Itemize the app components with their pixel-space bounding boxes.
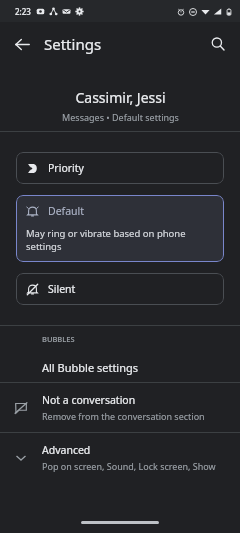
staticText: Advanced bbox=[42, 443, 91, 457]
button[interactable]: Advanced bbox=[0, 433, 240, 482]
staticText: All Bubble settings bbox=[42, 360, 139, 375]
button[interactable]: Back bbox=[6, 28, 38, 60]
staticText: Remove from the conversation section bbox=[42, 410, 205, 422]
staticText: May ring or vibrate based on phone setti… bbox=[26, 227, 214, 253]
staticText: BUBBLES bbox=[42, 334, 75, 344]
button[interactable]: Search bbox=[202, 28, 234, 60]
button[interactable]: Priority bbox=[16, 152, 224, 184]
staticText: Priority bbox=[48, 161, 84, 175]
staticText: Settings bbox=[44, 34, 102, 54]
staticText: Pop on screen, Sound, Lock screen, Show … bbox=[42, 460, 232, 472]
button[interactable]: All Bubble settings bbox=[0, 352, 240, 382]
button[interactable]: Silent bbox=[16, 273, 224, 305]
staticText: 2:23 bbox=[15, 6, 31, 17]
button[interactable]: Default bbox=[16, 195, 224, 262]
staticText: Default bbox=[48, 204, 85, 218]
staticText: Messages • Default settings bbox=[62, 111, 179, 123]
staticText: Cassimir, Jessi bbox=[75, 88, 166, 107]
staticText: Silent bbox=[48, 282, 76, 296]
staticText: Not a conversation bbox=[42, 393, 136, 407]
button[interactable]: Not a conversation bbox=[0, 383, 240, 432]
